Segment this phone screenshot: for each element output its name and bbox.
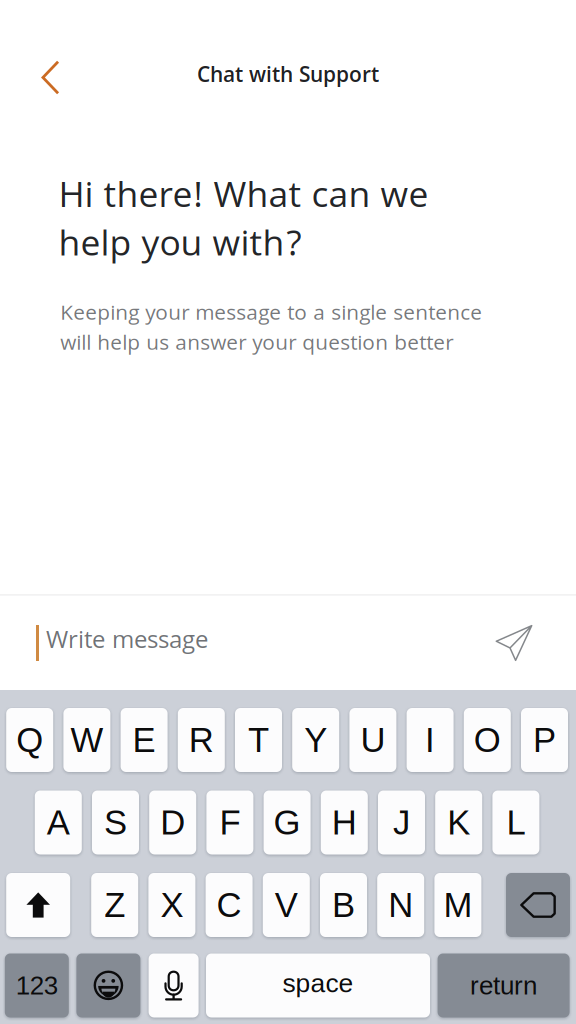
button[interactable]: Shift [6,873,70,937]
button[interactable]: Emoji [76,953,140,1017]
staticText: X [160,886,183,924]
button[interactable]: O [464,708,511,772]
staticText: F [219,803,240,842]
button[interactable]: C [206,873,253,937]
button[interactable]: W [63,708,110,772]
staticText: Q [16,721,43,759]
staticText: return [470,971,537,1000]
staticText: space [282,968,353,998]
button[interactable]: Z [91,873,138,937]
button[interactable]: G [264,790,311,854]
staticText: U [360,721,385,759]
button[interactable]: A [35,790,82,854]
button[interactable]: return [438,953,570,1017]
staticText: K [447,803,470,842]
staticText: Write message [46,622,208,664]
button[interactable]: Y [292,708,339,772]
staticText: will help us answer your question better [60,327,453,363]
button[interactable]: Back [20,48,80,106]
staticText: H [332,803,357,842]
button[interactable]: 123 [5,953,69,1017]
staticText: G [274,803,301,842]
staticText: Keeping your message to a single sentenc… [60,297,482,333]
button[interactable]: T [235,708,282,772]
staticText: M [443,886,472,924]
staticText: D [160,803,185,842]
button[interactable]: N [377,873,424,937]
button[interactable]: E [121,708,168,772]
button[interactable]: J [378,790,425,854]
staticText: Z [104,886,125,924]
staticText: S [104,803,127,842]
staticText: N [388,886,413,924]
button[interactable]: F [206,790,253,854]
button[interactable]: M [434,873,481,937]
button[interactable]: K [435,790,482,854]
button[interactable]: Delete [506,873,570,937]
button[interactable]: S [92,790,139,854]
staticText: O [474,721,501,759]
staticText: J [393,803,410,842]
staticText: W [70,721,103,759]
staticText: V [275,886,298,924]
button[interactable]: space [206,953,430,1017]
staticText: I [425,721,435,759]
staticText: B [332,886,355,924]
button[interactable]: L [492,790,539,854]
button[interactable]: H [321,790,368,854]
staticText: Hi there! What can we [59,169,429,230]
button[interactable]: Write message [46,608,466,678]
staticText: Chat with Support [197,59,379,95]
staticText: help you with? [59,217,303,278]
staticText: R [189,721,214,759]
staticText: T [248,721,269,759]
button[interactable]: V [263,873,310,937]
button[interactable]: Send [487,616,541,670]
staticText: Y [304,721,327,759]
staticText: A [47,803,70,842]
button[interactable]: Q [6,708,53,772]
button[interactable]: I [407,708,454,772]
staticText: E [133,721,156,759]
button[interactable]: D [149,790,196,854]
button[interactable]: X [148,873,195,937]
button[interactable]: B [320,873,367,937]
button[interactable]: P [521,708,568,772]
staticText: C [217,886,242,924]
staticText: L [506,803,525,842]
staticText: P [533,721,556,759]
button[interactable]: Dictate [149,953,199,1017]
button[interactable]: U [349,708,396,772]
staticText: 123 [16,971,58,1000]
button[interactable]: R [178,708,225,772]
